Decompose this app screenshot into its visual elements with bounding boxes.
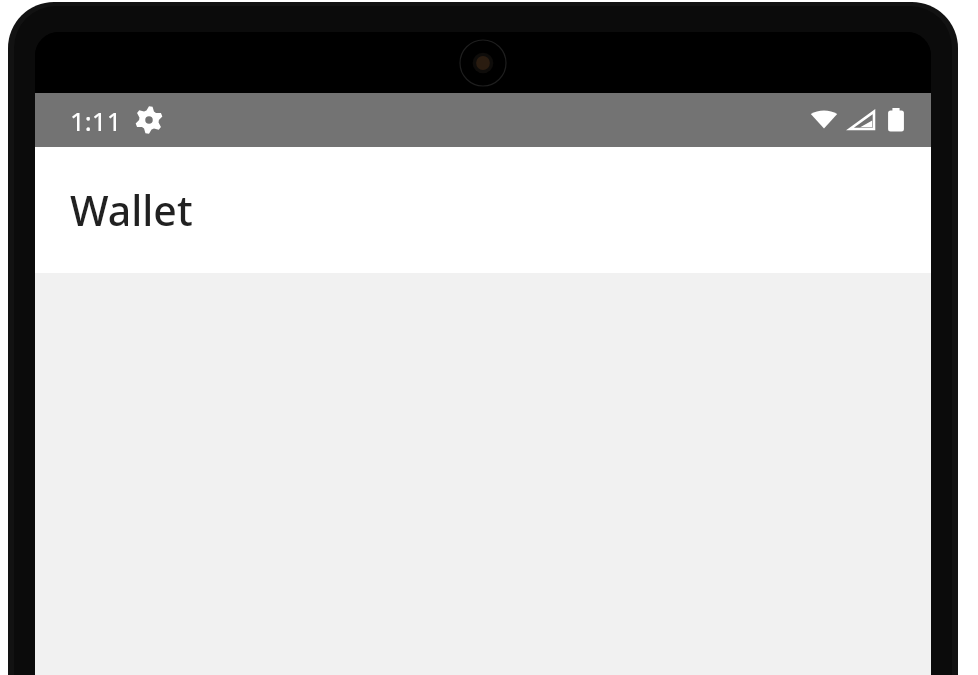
staticText: 1:11 bbox=[70, 103, 122, 138]
staticText: Wallet bbox=[70, 182, 193, 238]
button[interactable]: Settings bbox=[134, 105, 164, 135]
